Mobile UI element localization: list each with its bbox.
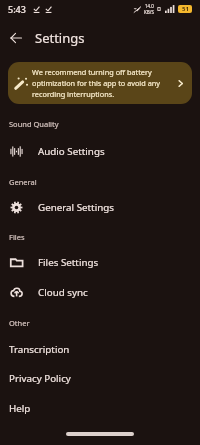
button[interactable]: Cloud sync xyxy=(0,277,200,307)
staticText: Other xyxy=(9,318,30,328)
staticText: 51 xyxy=(182,5,189,13)
staticText: 14.0 xyxy=(145,3,154,9)
button[interactable]: Privacy Policy xyxy=(0,363,200,393)
staticText: KB/S xyxy=(144,9,154,15)
button[interactable]: Transcription xyxy=(0,334,200,364)
staticText: Files xyxy=(9,232,25,242)
button[interactable]: Help xyxy=(0,393,200,423)
staticText: Sound Quality xyxy=(9,119,59,129)
staticText: Transcription xyxy=(9,343,70,356)
button[interactable]: We recommend turning off battery optimiz… xyxy=(8,62,192,104)
button[interactable]: Audio Settings xyxy=(0,136,200,166)
button[interactable]: General Settings xyxy=(0,192,200,222)
staticText: Settings xyxy=(35,29,85,47)
button[interactable]: Back xyxy=(0,22,32,54)
staticText: We recommend turning off battery optimiz… xyxy=(32,67,171,99)
staticText: 5:43 xyxy=(8,3,26,15)
staticText: General xyxy=(9,177,37,187)
staticText: Cloud sync xyxy=(38,286,88,299)
staticText: General Settings xyxy=(38,201,114,214)
staticText: Files Settings xyxy=(38,256,99,269)
staticText: Audio Settings xyxy=(38,145,105,158)
button[interactable]: Files Settings xyxy=(0,247,200,277)
staticText: Privacy Policy xyxy=(9,372,71,385)
staticText: Help xyxy=(9,402,31,415)
